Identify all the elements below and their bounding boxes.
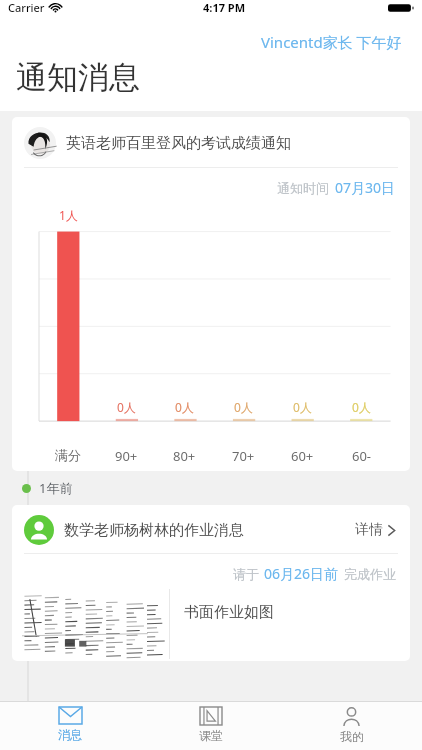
button[interactable]: 作业图片 (22, 589, 165, 661)
button[interactable]: 消息 (0, 702, 140, 750)
staticText: 请于 (233, 566, 259, 582)
staticText: 0人 (293, 399, 312, 415)
staticText: 06月26日前 (264, 564, 339, 583)
staticText: 满分 (55, 447, 81, 463)
staticText: 课堂 (199, 728, 223, 743)
staticText: Carrier (8, 0, 45, 15)
staticText: 消息 (58, 727, 82, 742)
button[interactable]: 我的 (281, 702, 422, 750)
staticText: 英语老师百里登风的考试成绩通知 (66, 134, 291, 153)
staticText: 我的 (340, 729, 364, 744)
staticText: 60+ (291, 447, 314, 465)
staticText: 通知时间 (277, 180, 329, 196)
button[interactable]: 课堂 (140, 702, 281, 750)
staticText: 书面作业如图 (184, 603, 274, 622)
staticText: 0人 (234, 399, 253, 415)
staticText: 0人 (117, 399, 136, 415)
button[interactable]: 详情 (353, 519, 398, 541)
button[interactable]: 数学老师杨树林的作业消息 (12, 505, 410, 661)
button[interactable]: Vincentd家长 下午好 (257, 28, 406, 56)
staticText: 0人 (175, 399, 194, 415)
staticText: 07月30日 (335, 178, 396, 197)
staticText: 通知消息 (16, 58, 140, 97)
staticText: 详情 (355, 521, 383, 539)
staticText: 完成作业 (344, 566, 396, 582)
staticText: 0人 (352, 399, 371, 415)
staticText: 1人 (59, 207, 78, 223)
staticText: 70+ (232, 447, 255, 465)
staticText: 60- (352, 447, 372, 465)
staticText: Vincentd家长 下午好 (261, 32, 402, 52)
staticText: 90+ (115, 447, 138, 465)
button[interactable]: 英语老师百里登风的考试成绩通知 (12, 117, 410, 471)
staticText: 80+ (173, 447, 196, 465)
staticText: 1年前 (39, 479, 73, 497)
staticText: 数学老师杨树林的作业消息 (64, 521, 244, 540)
staticText: 4:17 PM (203, 0, 246, 15)
